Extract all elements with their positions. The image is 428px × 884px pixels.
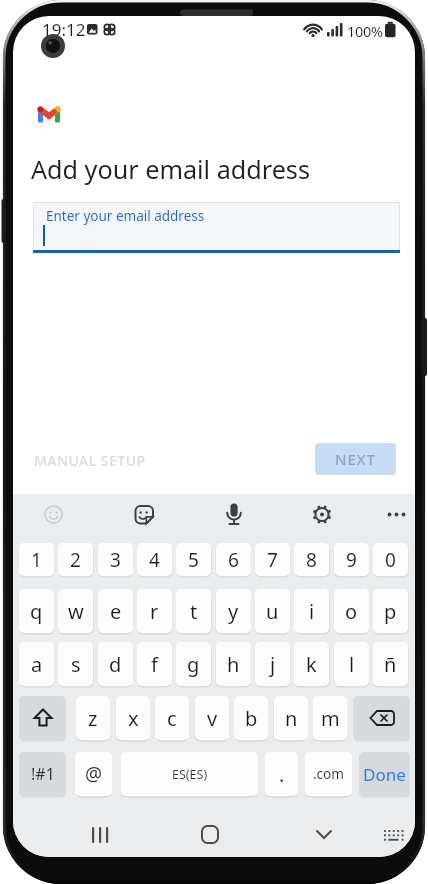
button[interactable]: s — [58, 642, 93, 686]
button[interactable]: x — [116, 696, 150, 740]
button[interactable]: n — [274, 696, 308, 740]
button[interactable]: 8 — [294, 543, 329, 576]
staticText: f — [151, 651, 158, 678]
button[interactable]: 1 — [19, 543, 54, 576]
button[interactable]: 5 — [176, 543, 211, 576]
button[interactable]: MANUAL SETUP — [34, 451, 164, 473]
button[interactable]: @ — [75, 752, 112, 796]
button[interactable] — [82, 819, 118, 853]
button[interactable]: i — [294, 589, 329, 633]
staticText: . — [279, 761, 285, 788]
staticText: 3 — [110, 547, 121, 573]
staticText: d — [109, 651, 122, 678]
staticText: x — [128, 705, 139, 732]
button[interactable]: .com — [305, 752, 352, 796]
staticText: @ — [85, 761, 103, 787]
staticText: r — [150, 598, 159, 625]
button[interactable] — [353, 696, 410, 740]
button[interactable]: p — [373, 589, 408, 633]
button[interactable]: 0 — [373, 543, 408, 576]
staticText: u — [266, 598, 279, 625]
button[interactable]: 6 — [216, 543, 251, 576]
button[interactable]: a — [19, 642, 54, 686]
button[interactable]: y — [216, 589, 251, 633]
staticText: b — [245, 705, 258, 732]
button[interactable]: Done — [359, 752, 410, 796]
staticText: Done — [363, 763, 406, 786]
button[interactable]: t — [176, 589, 211, 633]
button[interactable]: h — [216, 642, 251, 686]
staticText: j — [270, 651, 276, 678]
staticText: s — [71, 651, 81, 678]
button[interactable]: ñ — [373, 642, 408, 686]
button[interactable]: l — [334, 642, 369, 686]
staticText: p — [384, 598, 397, 625]
button[interactable]: q — [19, 589, 54, 633]
staticText: e — [110, 598, 122, 625]
button[interactable]: v — [195, 696, 229, 740]
staticText: l — [349, 651, 355, 678]
staticText: ES(ES) — [172, 766, 208, 783]
staticText: ñ — [384, 651, 397, 678]
button[interactable]: !#1 — [19, 752, 66, 796]
button[interactable]: g — [176, 642, 211, 686]
staticText: k — [306, 651, 317, 678]
staticText: 6 — [228, 547, 239, 573]
staticText: 100% — [347, 21, 383, 41]
staticText: 7 — [267, 547, 278, 573]
button[interactable]: c — [155, 696, 189, 740]
staticText: z — [88, 705, 98, 732]
staticText: g — [187, 651, 200, 678]
button[interactable]: ES(ES) — [121, 752, 258, 796]
button[interactable]: Enter your email address — [33, 202, 400, 253]
staticText: 19:12 — [42, 18, 86, 41]
staticText: w — [68, 598, 84, 625]
staticText: v — [207, 705, 218, 732]
staticText: c — [167, 705, 177, 732]
button[interactable]: f — [137, 642, 172, 686]
staticText: 8 — [306, 547, 317, 573]
button[interactable]: m — [313, 696, 347, 740]
button[interactable]: d — [98, 642, 133, 686]
staticText: Add your email address — [31, 152, 311, 186]
staticText: Enter your email address — [46, 207, 205, 225]
button[interactable]: 3 — [98, 543, 133, 576]
button[interactable] — [306, 819, 342, 853]
button[interactable] — [375, 819, 409, 853]
staticText: 9 — [346, 547, 357, 573]
button[interactable]: j — [255, 642, 290, 686]
button[interactable]: o — [334, 589, 369, 633]
button[interactable]: k — [294, 642, 329, 686]
staticText: 0 — [385, 547, 396, 573]
staticText: q — [30, 598, 43, 625]
button[interactable]: b — [234, 696, 268, 740]
staticText: o — [345, 598, 358, 625]
staticText: 1 — [31, 547, 42, 573]
button[interactable]: e — [98, 589, 133, 633]
staticText: 5 — [188, 547, 199, 573]
button[interactable]: u — [255, 589, 290, 633]
button[interactable]: 4 — [137, 543, 172, 576]
staticText: m — [321, 705, 340, 732]
staticText: 2 — [70, 547, 81, 573]
staticText: .com — [313, 765, 344, 783]
staticText: MANUAL SETUP — [34, 451, 146, 470]
staticText: a — [31, 651, 43, 678]
button[interactable]: w — [58, 589, 93, 633]
staticText: !#1 — [31, 763, 55, 785]
button[interactable] — [19, 696, 66, 740]
staticText: t — [190, 598, 198, 625]
staticText: 4 — [149, 547, 160, 573]
staticText: NEXT — [335, 449, 376, 469]
button[interactable]: NEXT — [315, 443, 396, 475]
button[interactable]: . — [265, 752, 298, 796]
staticText: h — [227, 651, 240, 678]
button[interactable]: 2 — [58, 543, 93, 576]
button[interactable]: r — [137, 589, 172, 633]
button[interactable] — [192, 819, 228, 853]
button[interactable]: 7 — [255, 543, 290, 576]
staticText: i — [309, 598, 315, 625]
staticText: n — [285, 705, 298, 732]
button[interactable]: 9 — [334, 543, 369, 576]
button[interactable]: z — [76, 696, 110, 740]
